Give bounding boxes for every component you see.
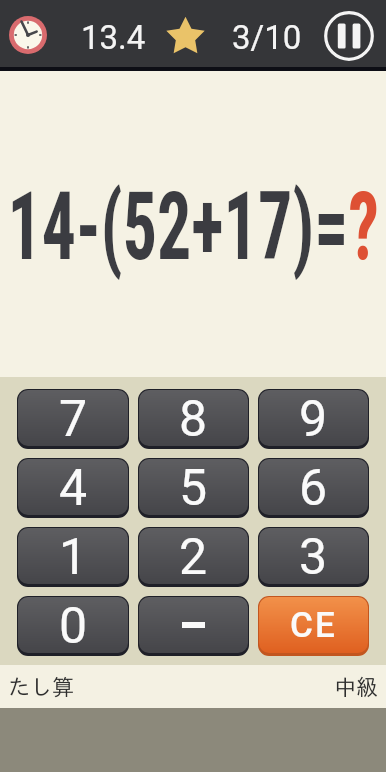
staticText: 3 xyxy=(299,528,328,584)
staticText: 7 xyxy=(59,390,88,446)
staticText: 1 xyxy=(59,528,88,584)
staticText: たし算 xyxy=(8,676,74,698)
staticText: 14-(52+17)=? xyxy=(7,172,379,282)
staticText: 13.4 xyxy=(81,18,146,57)
staticText: 9 xyxy=(299,390,328,446)
staticText: 中級 xyxy=(334,676,378,698)
staticText: 0 xyxy=(59,597,88,653)
staticText: 2 xyxy=(179,528,208,584)
staticText: 3/10 xyxy=(232,18,302,57)
staticText: 6 xyxy=(299,459,328,515)
staticText: 8 xyxy=(179,390,208,446)
staticText: 5 xyxy=(179,459,208,515)
staticText: 4 xyxy=(59,459,88,515)
staticText: CE xyxy=(290,605,338,646)
